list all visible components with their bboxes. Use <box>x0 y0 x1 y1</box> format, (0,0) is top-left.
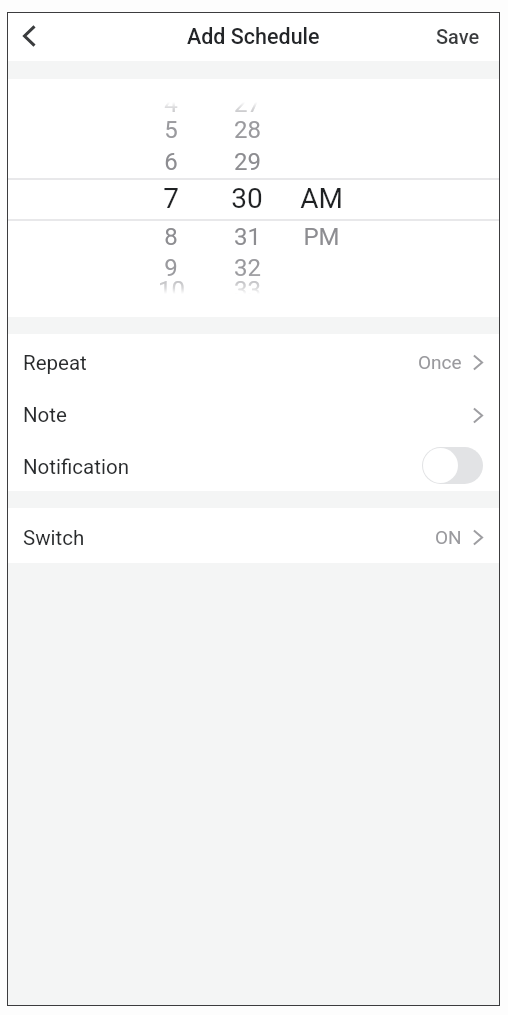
staticText: 27 <box>234 90 261 118</box>
staticText: 10 <box>158 276 185 304</box>
staticText: Switch <box>23 526 85 550</box>
staticText: Add Schedule <box>187 24 320 49</box>
staticText: 9 <box>164 254 178 282</box>
staticText: 5 <box>164 116 178 144</box>
staticText: 32 <box>234 254 261 282</box>
staticText: Once <box>418 351 462 373</box>
button[interactable]: Note <box>7 387 500 439</box>
button[interactable]: Notification <box>7 439 500 491</box>
staticText: AM <box>300 182 343 215</box>
staticText: 7 <box>163 182 179 215</box>
button[interactable]: Switch <box>7 508 500 563</box>
staticText: Note <box>23 403 67 427</box>
staticText: Notification <box>23 455 129 479</box>
staticText: 4 <box>164 90 178 118</box>
staticText: Save <box>436 25 480 48</box>
button[interactable]: Save <box>418 12 500 61</box>
button[interactable]: Notification toggle <box>422 447 483 484</box>
staticText: 31 <box>234 223 261 251</box>
staticText: PM <box>303 223 340 251</box>
staticText: 30 <box>231 182 263 215</box>
staticText: 29 <box>234 148 261 176</box>
button[interactable]: Back <box>7 13 55 61</box>
staticText: 8 <box>164 223 178 251</box>
staticText: 33 <box>234 276 261 304</box>
staticText: 6 <box>164 148 178 176</box>
staticText: Repeat <box>23 351 87 375</box>
button[interactable]: Repeat <box>7 334 500 387</box>
staticText: ON <box>435 526 462 548</box>
staticText: 28 <box>234 116 261 144</box>
